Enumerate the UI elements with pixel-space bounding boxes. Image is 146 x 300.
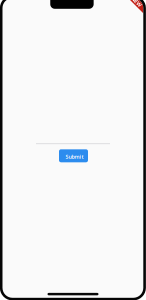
staticText: NEW (130, 0, 142, 5)
button[interactable]: Submit (59, 149, 88, 162)
staticText: Submit (65, 153, 83, 160)
